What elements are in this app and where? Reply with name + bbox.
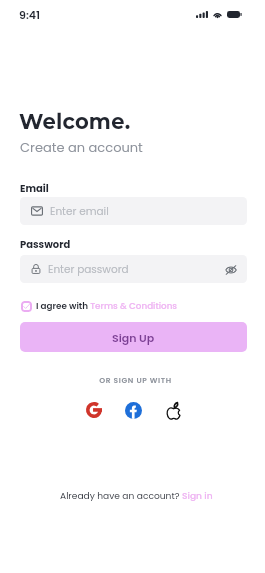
button[interactable]: I agree with Terms & Conditions <box>20 300 178 312</box>
button[interactable]: Sign Up <box>20 322 247 352</box>
staticText: Sign Up <box>112 330 155 345</box>
staticText: Password <box>20 237 71 251</box>
staticText: Create an account <box>20 138 143 156</box>
staticText: I agree with Terms & Conditions <box>36 300 178 312</box>
button[interactable]: Sign up with Apple <box>164 401 182 419</box>
staticText: Enter password <box>48 262 129 277</box>
button[interactable]: Sign in <box>182 489 213 502</box>
staticText: Already have an account? <box>60 489 182 502</box>
button[interactable]: Enter email <box>20 197 247 225</box>
button[interactable]: Show password <box>223 262 238 277</box>
button[interactable]: Enter password <box>20 255 247 283</box>
staticText: Welcome. <box>19 109 131 135</box>
staticText: Sign in <box>182 489 213 502</box>
staticText: OR SIGN UP WITH <box>3 375 265 385</box>
button[interactable]: Sign up with Google <box>85 401 103 419</box>
button[interactable]: Sign up with Facebook <box>124 401 142 419</box>
staticText: Email <box>20 181 49 195</box>
staticText: Enter email <box>50 204 109 219</box>
staticText: 9:41 <box>19 7 41 22</box>
